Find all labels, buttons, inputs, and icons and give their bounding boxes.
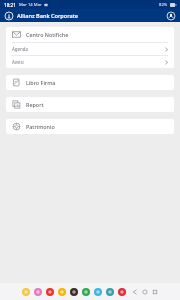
button[interactable]: App 3 [58, 288, 66, 296]
staticText: 18:21 [4, 2, 16, 8]
button[interactable]: Home [141, 288, 149, 296]
staticText: Centro Notifiche [26, 31, 69, 38]
button[interactable]: Recents [151, 288, 159, 296]
button[interactable]: Centro Notifiche [6, 27, 174, 42]
staticText: Allianz Bank Corporate [17, 12, 78, 20]
button[interactable]: Avvisi [6, 56, 174, 68]
button[interactable]: Report [6, 97, 174, 112]
staticText: Libro Firma [26, 79, 56, 86]
button[interactable]: Back [131, 288, 139, 296]
button[interactable]: App 5 [82, 288, 90, 296]
staticText: 82% [159, 2, 168, 8]
button[interactable]: App 7 [106, 288, 114, 296]
button[interactable]: Patrimonio [6, 119, 174, 134]
staticText: Patrimonio [26, 123, 55, 130]
button[interactable]: Libro Firma [6, 75, 174, 90]
button[interactable]: Profile [167, 12, 175, 20]
button[interactable]: App 4 [70, 288, 78, 296]
button[interactable]: App 1 [34, 288, 42, 296]
button[interactable]: App 0 [22, 288, 30, 296]
button[interactable]: Agenda [6, 43, 174, 55]
staticText: Avvisi [12, 59, 24, 65]
staticText: Mar 14 Mar [19, 2, 42, 8]
button[interactable]: App 6 [94, 288, 102, 296]
staticText: Agenda [12, 46, 28, 52]
staticText: Report [26, 101, 44, 108]
button[interactable]: Allianz logo menu [5, 12, 13, 20]
button[interactable]: App 2 [46, 288, 54, 296]
button[interactable]: App 8 [118, 288, 126, 296]
